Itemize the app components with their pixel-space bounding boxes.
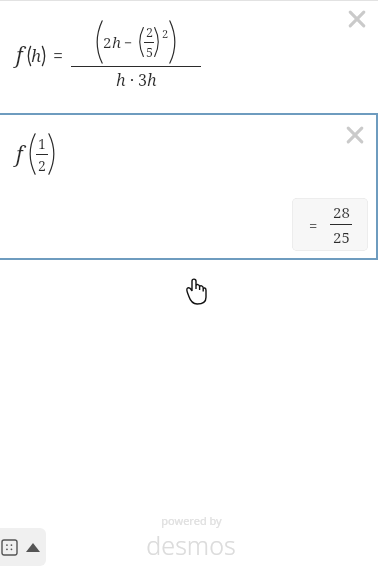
staticText: f (16, 140, 23, 169)
staticText: desmos (146, 528, 236, 562)
staticText: − (124, 33, 133, 52)
button[interactable]: Delete expression (345, 7, 369, 31)
staticText: 2 (103, 32, 112, 52)
staticText: h (112, 32, 121, 52)
staticText: 25 (333, 227, 350, 247)
staticText: 5 (146, 44, 153, 61)
button[interactable]: f (0, 115, 378, 258)
staticText: powered by (161, 513, 222, 528)
button[interactable]: Show keyboard (0, 528, 46, 566)
staticText: h (147, 69, 157, 91)
staticText: 1 (38, 134, 46, 153)
staticText: 2 (38, 156, 46, 175)
staticText: f (16, 41, 23, 70)
staticText: = (53, 43, 64, 68)
button[interactable]: Delete expression (343, 123, 367, 147)
staticText: 2 (162, 26, 169, 41)
staticText: 2 (146, 24, 153, 41)
button[interactable]: = (292, 198, 368, 251)
staticText: 3 (138, 69, 147, 91)
staticText: h (31, 44, 42, 67)
staticText: h (116, 69, 126, 91)
button[interactable]: f (0, 0, 378, 113)
staticText: 28 (333, 202, 350, 222)
staticText: = (309, 215, 318, 235)
